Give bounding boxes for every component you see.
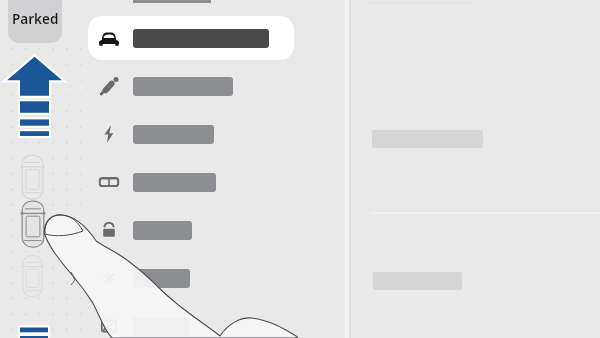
button[interactable] [88, 160, 294, 204]
staticText: Parked [12, 10, 59, 28]
button[interactable] [88, 208, 294, 252]
button[interactable] [88, 256, 294, 300]
button[interactable]: Parked [8, 0, 62, 43]
button[interactable] [88, 112, 294, 156]
button[interactable] [88, 64, 294, 108]
button[interactable] [88, 16, 294, 60]
button[interactable] [88, 304, 294, 338]
